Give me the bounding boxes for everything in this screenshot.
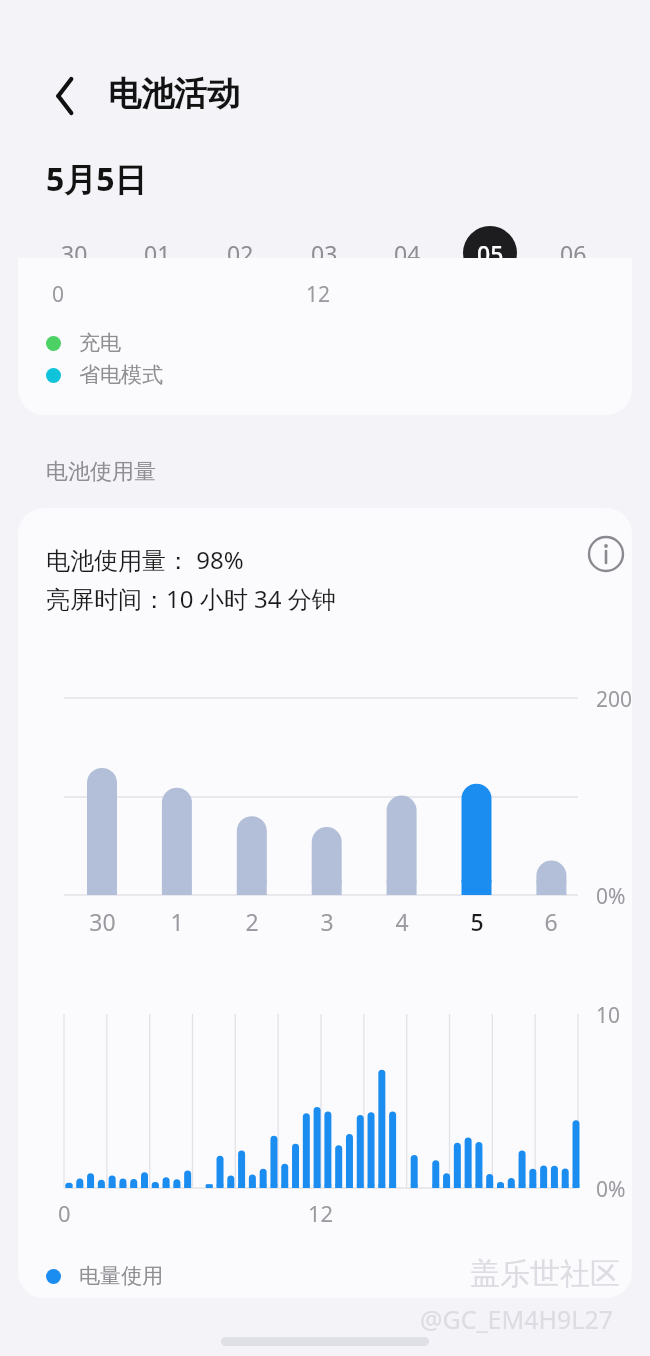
staticText: 5: [470, 906, 484, 937]
button[interactable]: 02: [210, 223, 270, 283]
staticText: 电池使用量： 98%: [46, 543, 244, 576]
staticText: 2: [245, 906, 259, 937]
staticText: 5月5日: [46, 157, 147, 201]
staticText: 3: [320, 906, 334, 937]
staticText: 充电: [79, 330, 121, 356]
staticText: 01: [144, 238, 171, 269]
staticText: 30: [89, 906, 116, 937]
staticText: 0%: [596, 1175, 626, 1204]
button[interactable]: Back: [30, 66, 90, 126]
staticText: 200: [596, 685, 632, 714]
staticText: 0%: [596, 882, 626, 911]
staticText: 电池使用量: [46, 458, 156, 486]
button[interactable]: 03: [294, 223, 354, 283]
button[interactable]: Information: [578, 526, 632, 582]
staticText: 06: [560, 238, 587, 269]
staticText: 30: [61, 238, 88, 269]
staticText: 盖乐世社区: [470, 1255, 620, 1293]
staticText: 02: [227, 238, 254, 269]
staticText: 6: [544, 906, 558, 937]
staticText: 0: [52, 280, 65, 309]
button[interactable]: 30: [44, 223, 104, 283]
staticText: 04: [394, 238, 421, 269]
button[interactable]: 06: [543, 223, 603, 283]
staticText: @GC_EM4H9L27: [420, 1302, 613, 1336]
staticText: 电池活动: [108, 73, 240, 115]
staticText: 05: [477, 238, 504, 269]
staticText: 省电模式: [79, 362, 163, 388]
staticText: 12: [308, 1198, 334, 1228]
staticText: 10: [596, 1001, 621, 1030]
button[interactable]: 05: [460, 223, 520, 283]
staticText: 1: [170, 906, 184, 937]
button[interactable]: 04: [377, 223, 437, 283]
staticText: 03: [311, 238, 338, 269]
staticText: 0: [58, 1198, 71, 1228]
button[interactable]: 01: [127, 223, 187, 283]
staticText: 4: [395, 906, 409, 937]
staticText: 亮屏时间：10 小时 34 分钟: [46, 582, 336, 615]
staticText: 12: [306, 280, 331, 309]
staticText: 电量使用: [79, 1263, 163, 1289]
